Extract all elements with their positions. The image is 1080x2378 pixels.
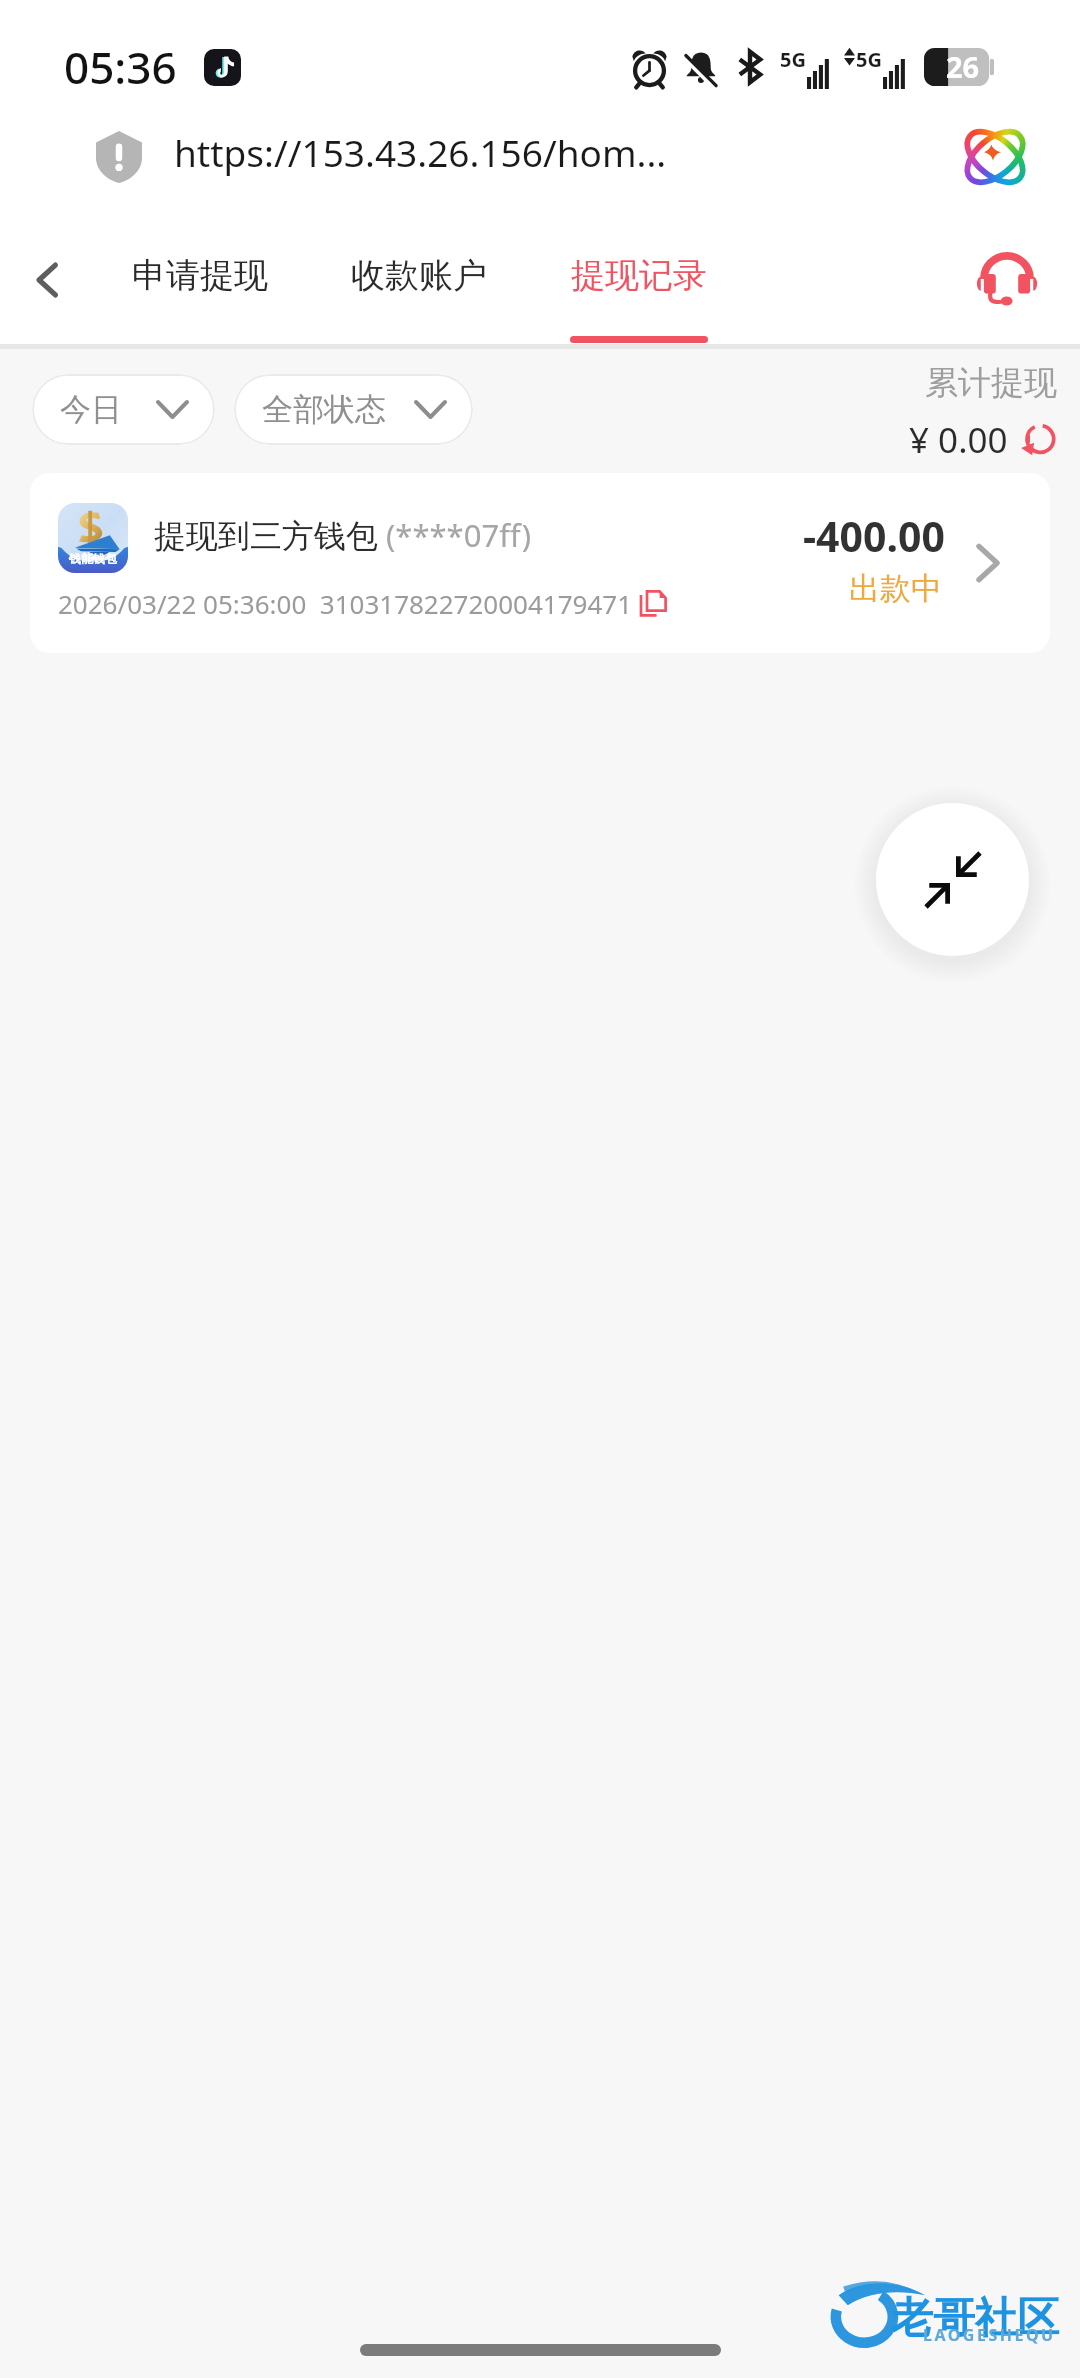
button[interactable]: Customer service	[948, 224, 1066, 338]
staticText: 5G	[780, 46, 806, 73]
staticText: 26	[946, 47, 980, 85]
button[interactable]: 申请提现	[131, 230, 269, 344]
staticText: 累计提现	[925, 362, 1057, 404]
staticText: 05:36	[64, 37, 177, 97]
staticText: 申请提现	[132, 254, 268, 297]
staticText: https://153.43.26.156/hom...	[174, 127, 667, 177]
staticText: 出款中	[849, 569, 942, 608]
staticText: 钱能钱包	[69, 551, 117, 566]
button[interactable]: 提现记录	[570, 230, 708, 344]
staticText: 今日	[60, 390, 122, 429]
button[interactable]: Copy	[638, 589, 668, 619]
button[interactable]: 全部状态	[234, 374, 473, 445]
staticText: LAOGESHEQU	[923, 2324, 1056, 2346]
staticText: 提现记录	[571, 254, 707, 297]
button[interactable]: Refresh	[1020, 422, 1057, 459]
staticText: ¥ 0.00	[909, 416, 1008, 464]
staticText: 老哥社区	[891, 2292, 1059, 2345]
button[interactable]: Back	[4, 223, 90, 337]
button[interactable]: 收款账户	[350, 230, 488, 344]
staticText: 2026/03/22 05:36:00 31031782272000417947…	[58, 586, 633, 621]
staticText: 收款账户	[351, 254, 487, 297]
button[interactable]: Collapse	[876, 803, 1029, 956]
button[interactable]: 钱能钱包	[30, 473, 1050, 653]
staticText: (****07ff)	[378, 514, 532, 556]
staticText: 全部状态	[262, 390, 386, 429]
staticText: 5G	[856, 46, 882, 73]
staticText: -400.00	[803, 508, 945, 564]
staticText: 提现到三方钱包	[154, 516, 378, 556]
button[interactable]: 今日	[32, 374, 215, 445]
button[interactable]: Browser menu	[958, 120, 1032, 194]
